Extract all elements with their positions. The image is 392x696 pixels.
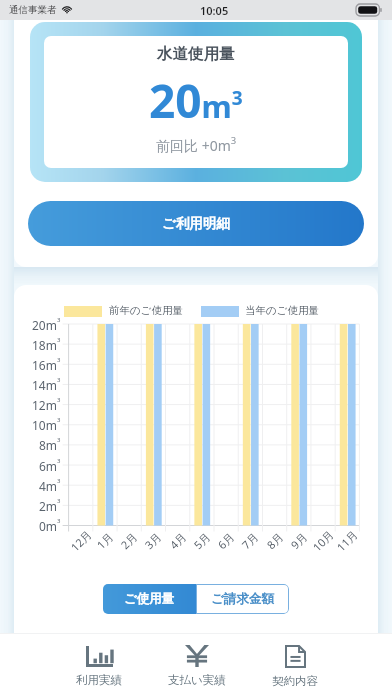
button[interactable]: 利用実績 [50,633,148,696]
staticText: 4月 [166,529,190,552]
staticText: 2月 [117,529,141,552]
button[interactable]: ご使用量 [103,584,196,614]
staticText: 14m3 [32,376,61,393]
staticText: 0m3 [39,517,61,534]
staticText: 5月 [190,529,214,552]
button[interactable]: 契約内容 [246,633,344,696]
staticText: 支払い実績 [168,673,226,687]
staticText: 20m3 [149,69,243,132]
staticText: 10月 [309,527,337,554]
button[interactable]: ご利用明細 [28,201,364,246]
staticText: 18m3 [32,336,61,353]
staticText: 11月 [333,527,361,554]
staticText: 契約内容 [272,674,318,688]
staticText: 6m3 [39,457,61,474]
staticText: 前年のご使用量 [109,304,183,315]
staticText: 8m3 [39,436,61,453]
staticText: ご利用明細 [162,215,230,232]
staticText: 12月 [67,527,95,554]
staticText: 10m3 [32,416,61,433]
staticText: 当年のご使用量 [245,304,319,315]
staticText: 6月 [214,529,238,552]
staticText: 8月 [263,529,287,552]
staticText: 通信事業者 [9,4,57,16]
staticText: ご請求金額 [211,591,274,607]
staticText: ご使用量 [124,591,175,607]
staticText: 9月 [287,529,311,552]
staticText: 2m3 [39,497,61,514]
button[interactable]: 支払い実績 [148,633,246,696]
staticText: 10:05 [200,3,229,18]
staticText: 4m3 [39,477,61,494]
staticText: 7月 [238,529,262,552]
staticText: 水道使用量 [157,44,235,64]
staticText: 1月 [93,529,117,552]
staticText: 16m3 [32,356,61,373]
staticText: 前回比 +0m3 [156,134,237,155]
staticText: 12m3 [32,396,61,413]
button[interactable]: ご請求金額 [196,584,289,614]
staticText: 20m3 [32,316,61,333]
staticText: 利用実績 [76,673,122,687]
staticText: 3月 [141,529,165,552]
